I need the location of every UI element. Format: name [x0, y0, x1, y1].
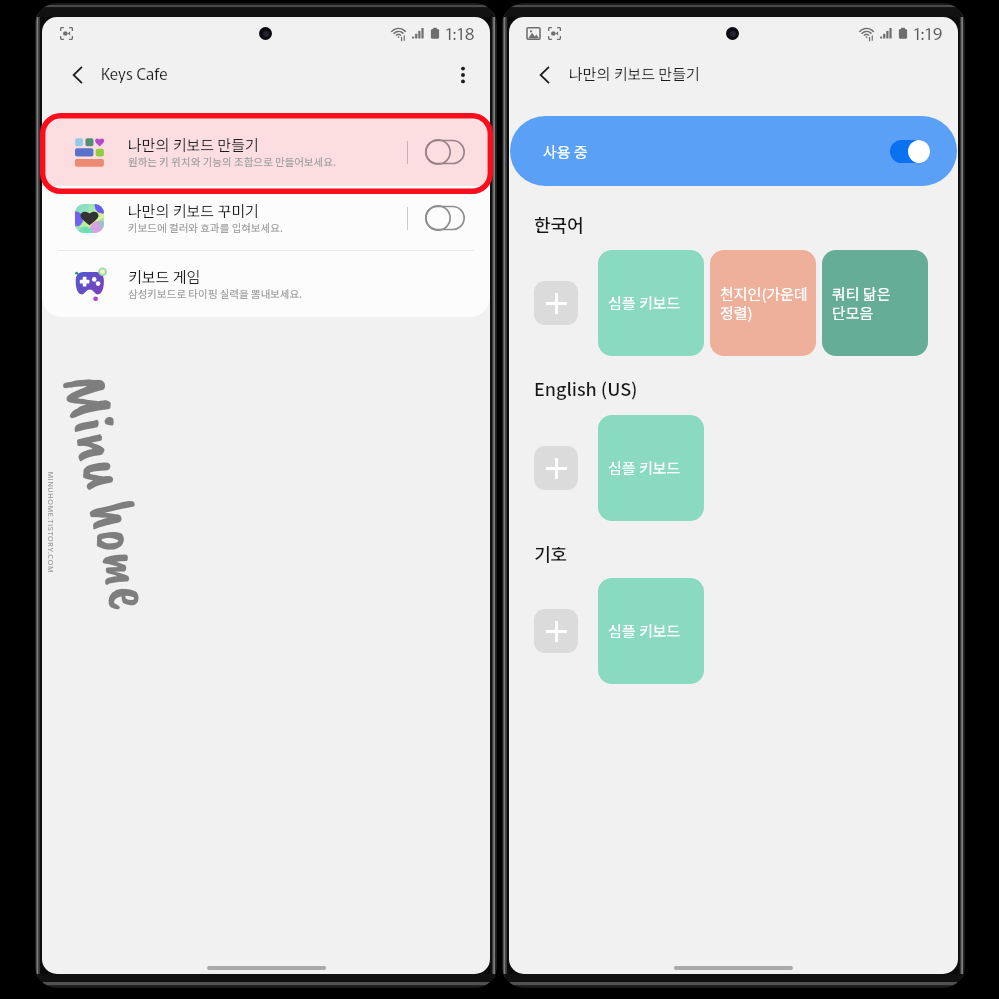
button[interactable]: 나만의 키보드 꾸미기 [42, 186, 490, 251]
staticText: 심플 키보드 [608, 292, 681, 314]
staticText: MINUHOME.TISTORY.COM [44, 471, 56, 573]
staticText: 1:19 [913, 20, 943, 45]
button[interactable]: 천지인(가운데 정렬) [710, 250, 816, 356]
staticText: 천지인(가운데 정렬) [720, 283, 808, 324]
button[interactable]: 쿼티 닮은 단모음 [822, 250, 928, 356]
staticText: English (US) [534, 375, 638, 401]
staticText: 기호 [534, 540, 568, 566]
staticText: 쿼티 닮은 단모음 [832, 283, 891, 324]
button[interactable]: Back [60, 57, 96, 93]
button[interactable]: Keyboard in use toggle [890, 140, 930, 163]
staticText: 키보드 게임 [128, 266, 201, 288]
staticText: 삼성키보드로 타이핑 실력을 뽐내보세요. [128, 286, 303, 301]
button[interactable]: Back [527, 57, 563, 93]
button[interactable]: 심플 키보드 [598, 578, 704, 684]
staticText: 나만의 키보드 꾸미기 [128, 200, 259, 222]
staticText: 나만의 키보드 만들기 [128, 134, 259, 156]
button[interactable]: 심플 키보드 [598, 415, 704, 521]
staticText: 1:18 [445, 20, 475, 45]
button[interactable]: 키보드 게임 [42, 251, 490, 317]
button[interactable]: 사용 중 [510, 116, 957, 186]
button[interactable]: Add keyboard [534, 446, 578, 490]
staticText: 한국어 [534, 211, 584, 237]
staticText: 심플 키보드 [608, 620, 681, 642]
staticText: Keys Cafe [101, 61, 168, 84]
staticText: 원하는 키 위치와 기능의 조합으로 만들어보세요. [128, 154, 336, 169]
staticText: 키보드에 컬러와 효과를 입혀보세요. [128, 220, 283, 235]
button[interactable]: Add keyboard [534, 609, 578, 653]
button[interactable]: 심플 키보드 [598, 250, 704, 356]
button[interactable]: Add keyboard [534, 281, 578, 325]
staticText: 사용 중 [543, 141, 588, 163]
button[interactable]: More options [445, 57, 481, 93]
button[interactable]: 나만의 키보드 만들기 [42, 119, 490, 186]
staticText: 심플 키보드 [608, 457, 681, 479]
staticText: Minu home [45, 366, 173, 617]
staticText: 나만의 키보드 만들기 [569, 63, 700, 85]
